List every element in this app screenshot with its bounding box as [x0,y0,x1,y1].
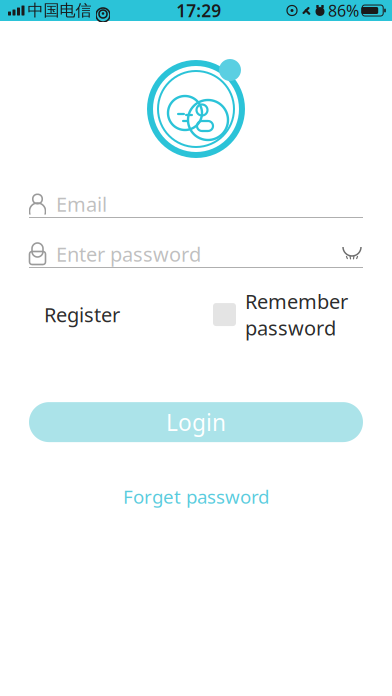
staticText: 中国电信 [27,1,91,20]
button[interactable]: Remember password [213,288,348,341]
staticText: Remember password [245,288,348,341]
staticText: 17:29 [176,0,221,22]
staticText: Forget password [123,484,269,509]
staticText: Register [44,301,120,328]
button[interactable]: Login [0,402,392,442]
button[interactable]: Register [44,295,120,334]
staticText: Email [56,191,107,217]
button[interactable]: Email [0,191,392,218]
button[interactable]: Forget password [123,478,269,515]
staticText: Login [166,407,226,437]
staticText: Enter password [56,241,201,267]
button[interactable]: Enter password [0,241,392,268]
staticText: 86% [328,0,359,21]
